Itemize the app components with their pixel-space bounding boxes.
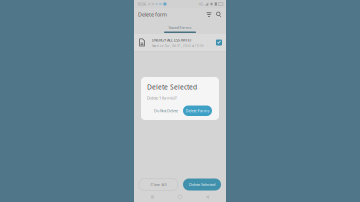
button[interactable]: ENERGY ACCESS (MFE)	[134, 34, 226, 51]
button[interactable]: Delete Forms	[183, 105, 212, 116]
staticText: Do Not Delete	[154, 108, 178, 113]
staticText: Saved on Tue, Oct 01, 2024 at 13:36	[152, 44, 204, 48]
staticText: Delete form	[138, 11, 167, 18]
staticText: Delete 1 form(s)?	[147, 95, 177, 101]
button[interactable]: Recent apps	[143, 192, 161, 202]
staticText: Delete Forms	[185, 108, 209, 113]
staticText: ENERGY ACCESS (MFE)	[152, 37, 191, 43]
staticText: Saved Forms	[168, 25, 191, 30]
button[interactable]: Clear All	[139, 178, 178, 190]
staticText: 4G	[198, 1, 203, 7]
button[interactable]: Do Not Delete	[152, 106, 180, 116]
staticText: 10:56	[137, 1, 146, 7]
button[interactable]: Saved Forms	[134, 21, 226, 34]
staticText: Delete Selected	[189, 182, 215, 187]
staticText: Clear All	[150, 182, 166, 187]
button[interactable]: Search	[214, 8, 224, 21]
button[interactable]: Back	[198, 192, 216, 202]
button[interactable]: Sort	[204, 8, 214, 21]
button[interactable]: Delete Selected	[183, 178, 221, 190]
staticText: Delete Selected	[147, 82, 197, 91]
